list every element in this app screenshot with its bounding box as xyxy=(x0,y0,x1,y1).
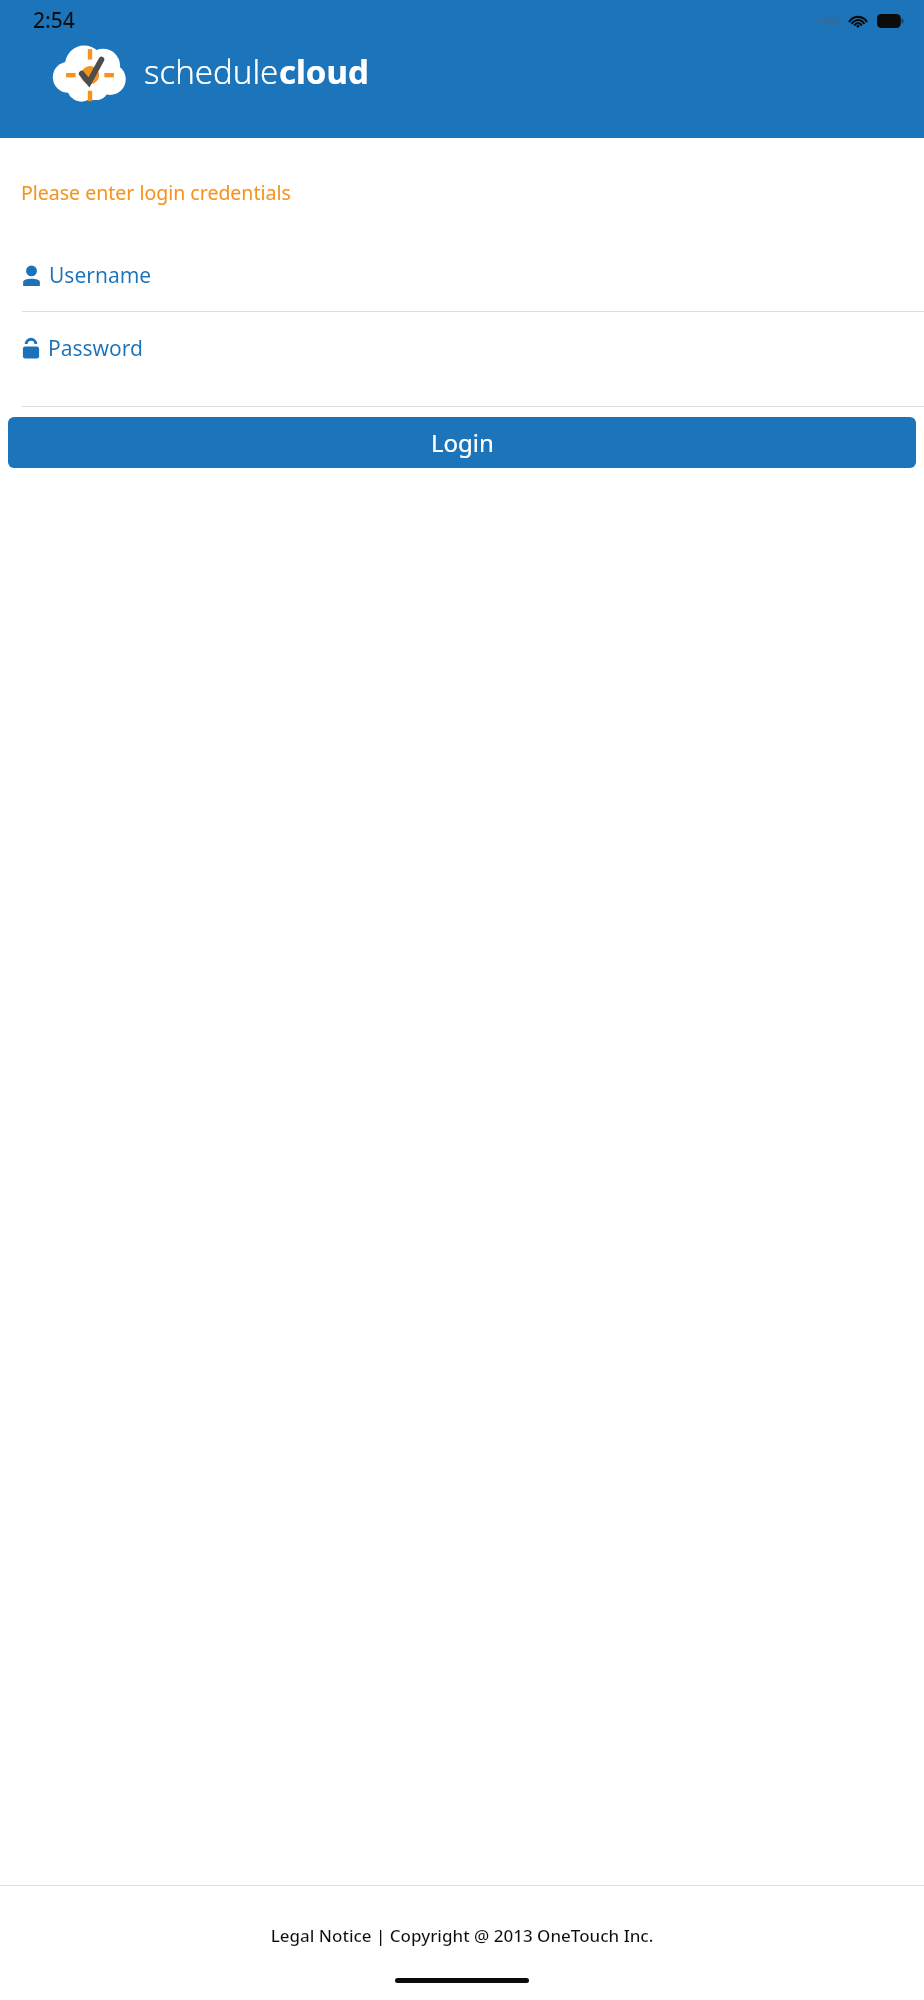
staticText: schedule xyxy=(144,49,279,94)
staticText: Username xyxy=(49,261,152,290)
button[interactable]: Password xyxy=(0,330,924,367)
staticText: 2:54 xyxy=(33,6,75,35)
staticText: cloud xyxy=(279,49,369,94)
button[interactable]: Login xyxy=(8,417,916,468)
staticText: Login xyxy=(431,426,494,459)
staticText: Password xyxy=(48,334,143,363)
other: Username xyxy=(22,266,41,286)
staticText: Please enter login credentials xyxy=(21,179,291,206)
button[interactable]: Username xyxy=(0,257,924,294)
other: Password xyxy=(22,338,40,359)
staticText: Legal Notice | Copyright @ 2013 OneTouch… xyxy=(0,1924,924,1947)
